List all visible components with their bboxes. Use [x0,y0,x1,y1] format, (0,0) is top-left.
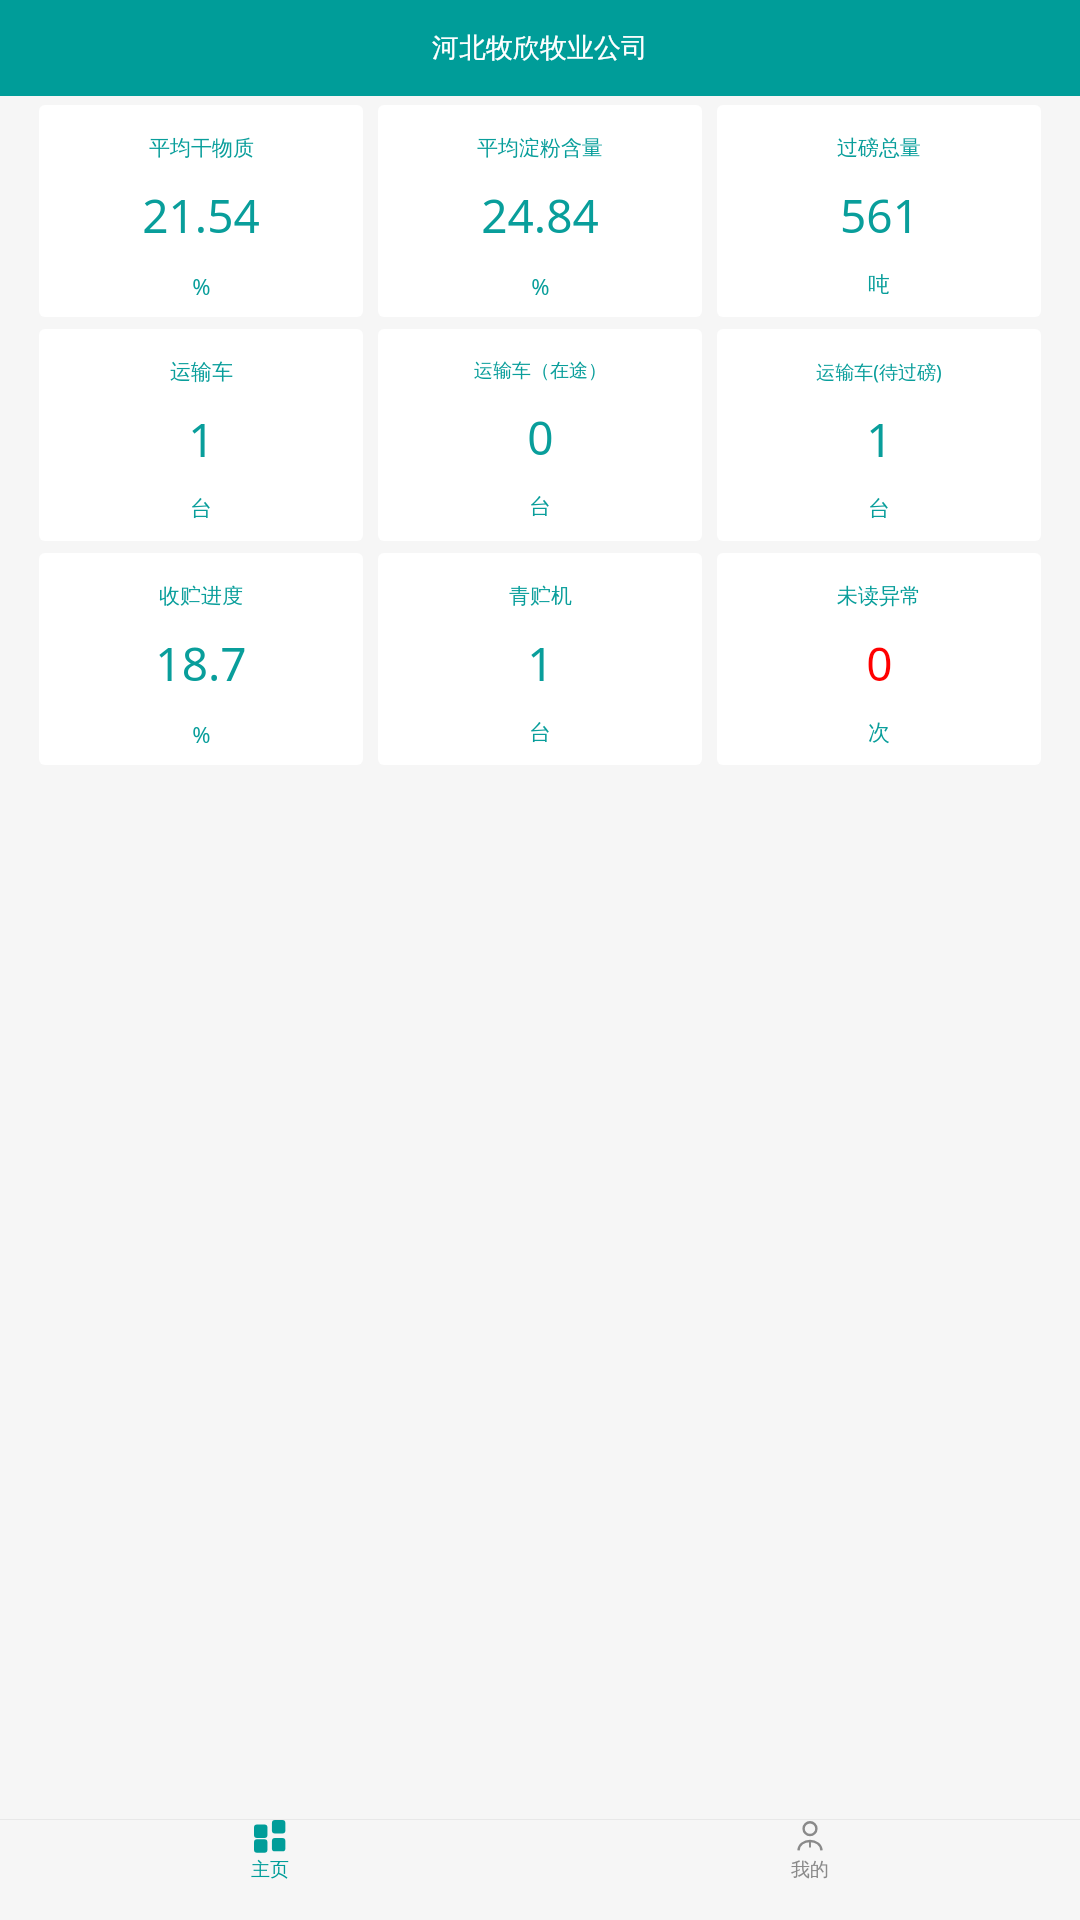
staticText: 运输车(待过磅) [816,359,942,385]
staticText: 台 [529,719,551,747]
staticText: 我的 [791,1858,829,1882]
button[interactable]: 青贮机 [378,553,702,765]
button[interactable]: 主页 [0,1820,540,1882]
staticText: 运输车（在途） [474,359,607,383]
button[interactable]: 平均干物质 [39,105,363,317]
button[interactable]: 平均淀粉含量 [378,105,702,317]
staticText: 次 [868,719,890,747]
staticText: 台 [868,495,890,523]
staticText: 24.84 [481,184,599,247]
staticText: 561 [840,184,919,247]
button[interactable]: 收贮进度 [39,553,363,765]
staticText: % [531,271,550,301]
staticText: 1 [527,632,554,695]
staticText: 青贮机 [509,583,572,609]
staticText: 0 [527,406,554,469]
staticText: 平均干物质 [149,135,254,161]
button[interactable]: 运输车（在途） [378,329,702,541]
staticText: 台 [529,493,551,521]
staticText: % [192,719,211,749]
button[interactable]: 过磅总量 [717,105,1041,317]
button[interactable]: 运输车(待过磅) [717,329,1041,541]
staticText: 平均淀粉含量 [477,135,603,161]
staticText: 未读异常 [837,583,921,609]
staticText: 主页 [251,1858,289,1882]
staticText: 台 [190,495,212,523]
staticText: 1 [188,408,215,471]
staticText: 河北牧欣牧业公司 [432,31,648,65]
button[interactable]: 我的 [540,1820,1080,1882]
staticText: 0 [866,632,893,695]
staticText: 过磅总量 [837,135,921,161]
staticText: 收贮进度 [159,583,243,609]
staticText: 21.54 [142,184,260,247]
staticText: % [192,271,211,301]
button[interactable]: 运输车 [39,329,363,541]
staticText: 1 [866,408,893,471]
staticText: 运输车 [170,359,233,385]
staticText: 18.7 [155,632,247,695]
button[interactable]: 未读异常 [717,553,1041,765]
staticText: 吨 [868,271,890,299]
